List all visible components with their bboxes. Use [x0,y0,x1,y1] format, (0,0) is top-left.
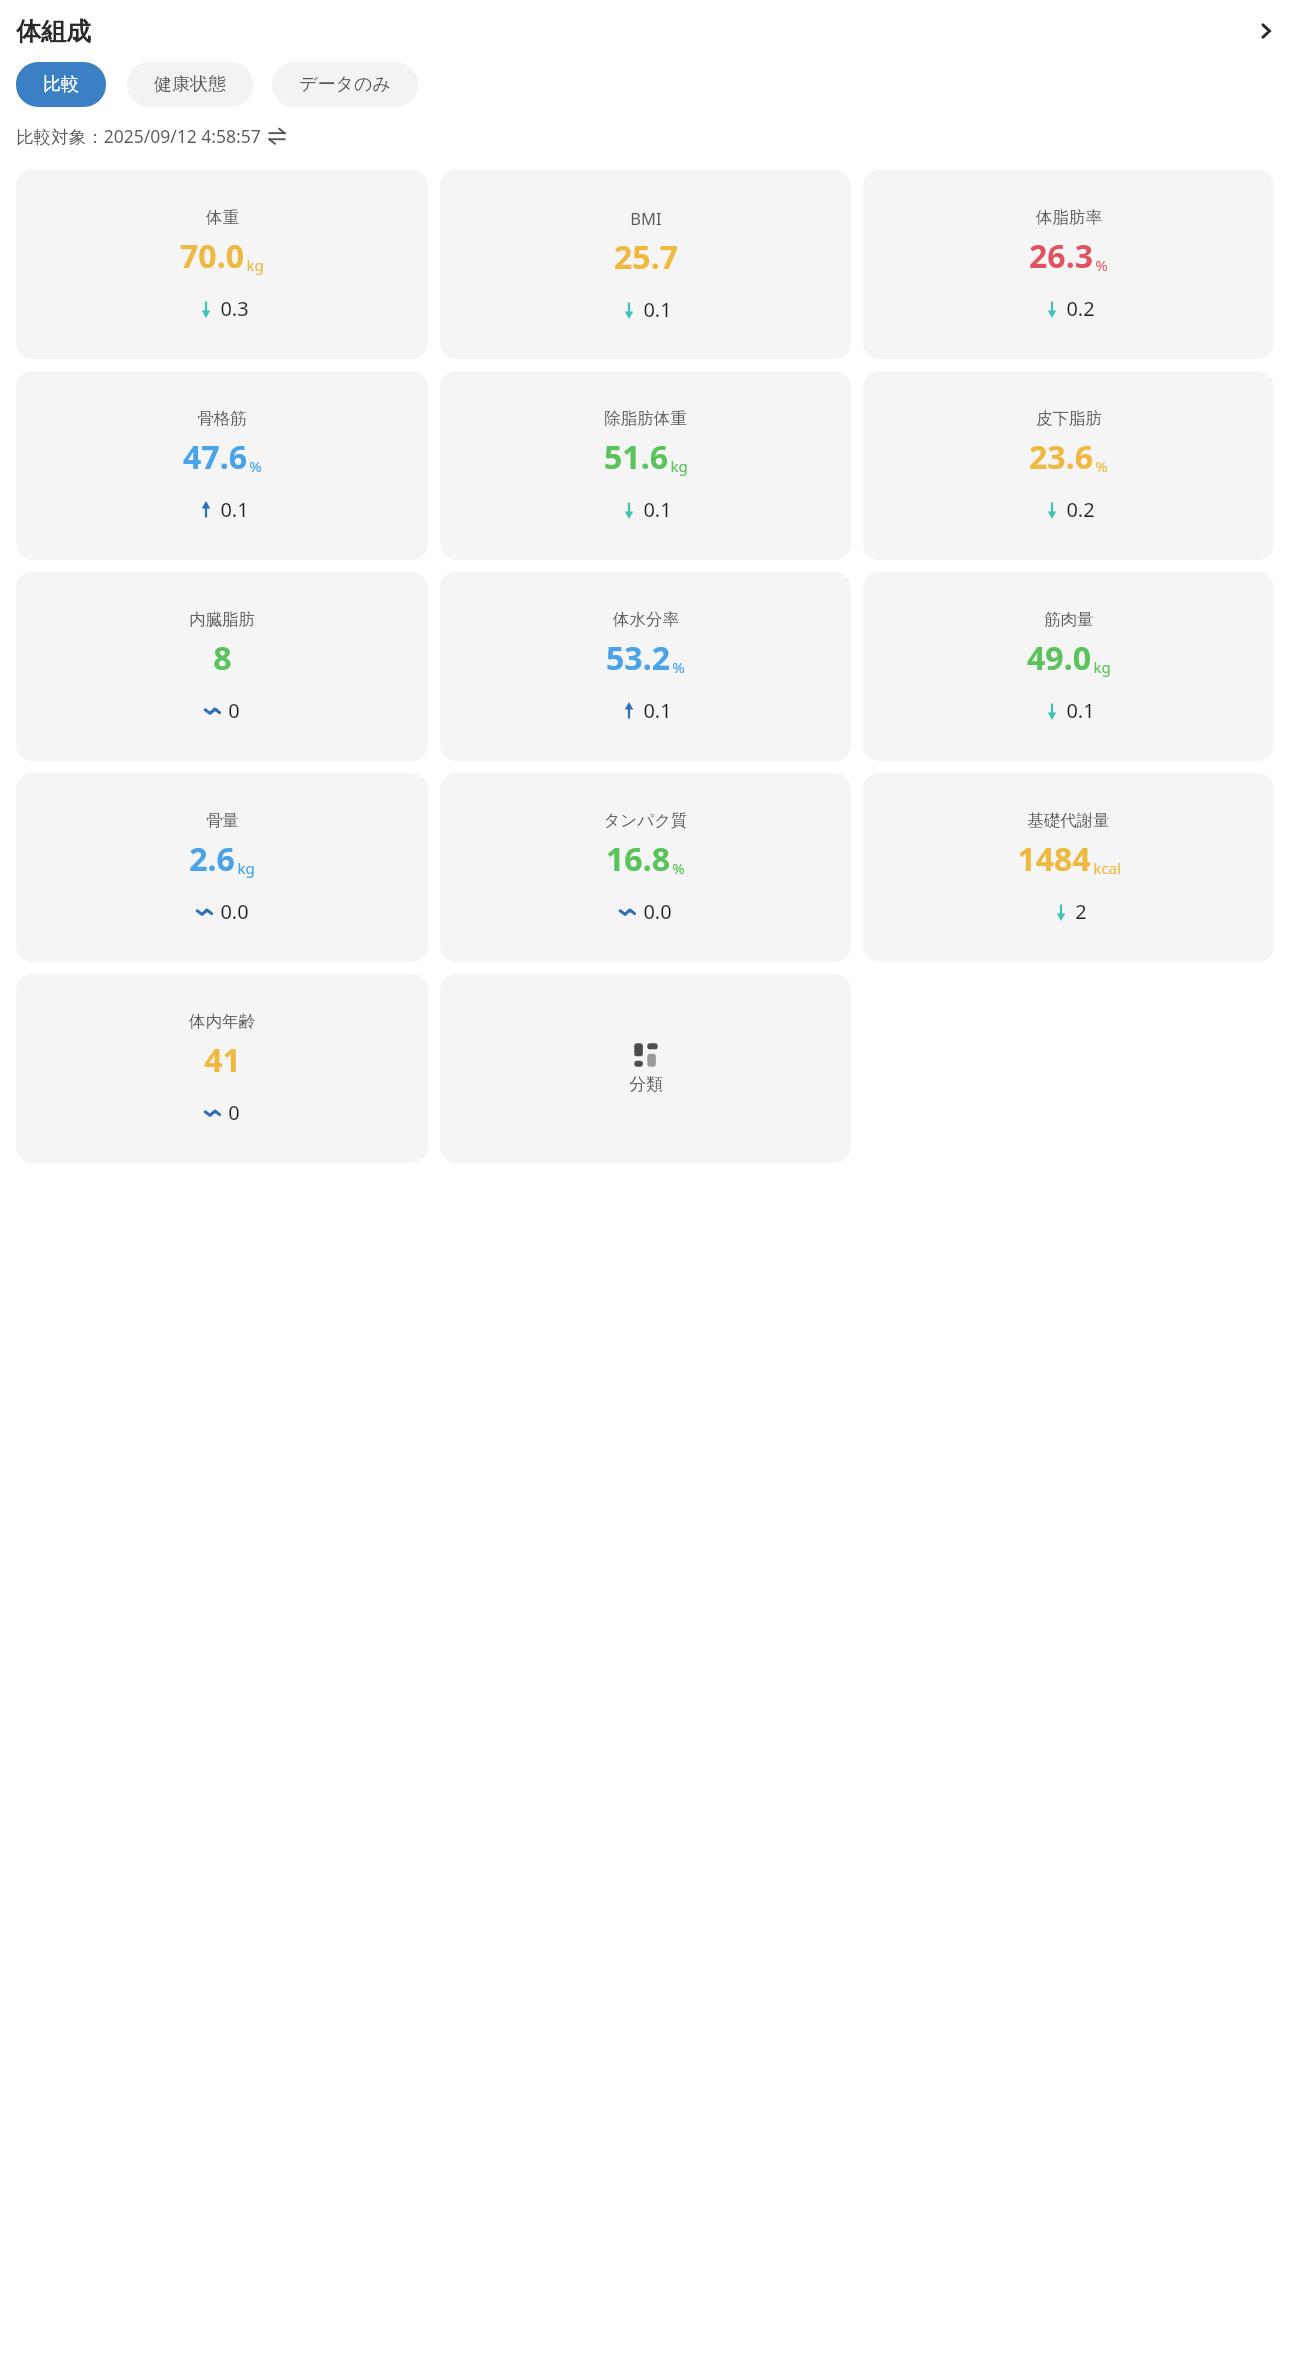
button[interactable]: 体内年齢 [16,974,428,1163]
staticText: 0 [228,697,240,724]
staticText: 骨量 [206,810,239,831]
staticText: 0.1 [643,496,672,523]
staticText: BMI [630,207,662,229]
button[interactable]: 筋肉量 [863,572,1274,761]
staticText: 41 [204,1038,241,1082]
button[interactable]: 健康状態 [127,62,253,107]
staticText: 26.3 [1029,234,1093,278]
staticText: % [1095,255,1108,275]
staticText: 皮下脂肪 [1036,408,1102,429]
staticText: 体脂肪率 [1036,207,1102,228]
staticText: 体水分率 [613,609,679,630]
button[interactable]: 比較 [16,62,106,107]
button[interactable]: 除脂肪体重 [440,371,851,560]
staticText: 体内年齢 [189,1011,255,1032]
staticText: 16.8 [606,837,670,881]
staticText: 比較 [43,73,79,96]
button[interactable]: 皮下脂肪 [863,371,1274,560]
staticText: データのみ [299,73,391,96]
staticText: 0.1 [643,697,672,724]
button[interactable]: 骨格筋 [16,371,428,560]
staticText: 2.6 [189,837,235,881]
staticText: 0.1 [643,296,672,323]
staticText: 53.2 [606,636,670,680]
button[interactable]: 体水分率 [440,572,851,761]
staticText: 内臓脂肪 [189,609,255,630]
button[interactable]: 体脂肪率 [863,170,1274,359]
button[interactable]: 基礎代謝量 [863,773,1274,962]
staticText: kg [246,255,264,275]
staticText: % [672,657,685,677]
staticText: 8 [213,636,232,680]
staticText: 47.6 [183,435,247,479]
staticText: 23.6 [1029,435,1093,479]
staticText: 0.3 [220,295,249,322]
staticText: 除脂肪体重 [604,408,687,429]
staticText: タンパク質 [603,810,688,831]
staticText: 分類 [629,1074,663,1095]
button[interactable]: 内臓脂肪 [16,572,428,761]
staticText: 健康状態 [154,73,226,96]
staticText: kg [1093,657,1111,677]
staticText: 0 [228,1099,240,1126]
staticText: 2 [1075,898,1087,925]
staticText: 0.1 [220,496,249,523]
staticText: 51.6 [604,435,668,479]
staticText: % [1095,456,1108,476]
button[interactable]: 比較対象：2025/09/12 4:58:57 [16,124,286,148]
staticText: 0.2 [1066,496,1095,523]
staticText: 0.1 [1066,697,1095,724]
button[interactable]: 体重 [16,170,428,359]
staticText: kg [670,456,688,476]
staticText: kg [237,858,255,878]
staticText: 比較対象：2025/09/12 4:58:57 [16,124,261,148]
staticText: 49.0 [1027,636,1091,680]
button[interactable]: 詳細 [1242,7,1290,55]
staticText: % [672,858,685,878]
staticText: 0.0 [643,898,672,925]
staticText: % [249,456,262,476]
button[interactable]: BMI [440,170,851,359]
staticText: 体組成 [16,16,91,47]
staticText: 0.0 [220,898,249,925]
staticText: 体重 [206,207,239,228]
staticText: kcal [1093,858,1121,878]
button[interactable]: データのみ [272,62,418,107]
staticText: 0.2 [1066,295,1095,322]
button[interactable]: 骨量 [16,773,428,962]
button[interactable]: タンパク質 [440,773,851,962]
staticText: 基礎代謝量 [1027,810,1110,831]
staticText: 筋肉量 [1044,609,1094,630]
button[interactable]: 分類 [440,974,851,1163]
staticText: 70.0 [180,234,244,278]
staticText: 25.7 [614,235,678,279]
staticText: 1484 [1017,837,1091,881]
staticText: 骨格筋 [197,408,247,429]
